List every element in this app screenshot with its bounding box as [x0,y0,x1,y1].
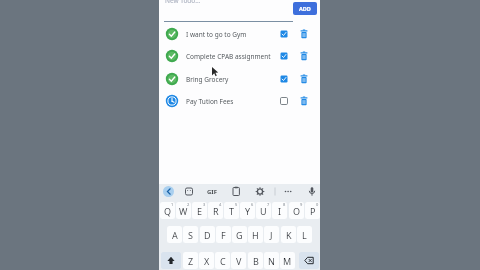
button[interactable]: Y [240,202,255,219]
button[interactable]: A [167,226,182,243]
staticText: Complete CPAB assignment [186,52,271,61]
staticText: H [252,229,259,241]
staticText: 4 [219,202,222,207]
staticText: Pay Tution Fees [186,97,234,106]
button[interactable]: P [305,202,320,219]
button[interactable]: O [289,202,304,219]
staticText: M [283,255,292,267]
staticText: J [270,229,273,241]
staticText: New Todo... [165,0,201,5]
staticText: L [302,229,307,241]
staticText: 8 [283,202,286,207]
button[interactable]: R [208,202,223,219]
button[interactable]: V [231,252,246,269]
staticText: 2 [187,202,190,207]
staticText: I want to go to Gym [186,30,247,39]
button[interactable]: B [248,252,263,269]
staticText: 3 [203,202,206,207]
button[interactable]: C [215,252,230,269]
button[interactable]: D [200,226,215,243]
staticText: N [268,255,275,267]
button[interactable]: L [297,226,312,243]
staticText: Bring Grocery [186,75,229,84]
staticText: C [220,255,226,267]
staticText: G [236,229,243,241]
staticText: X [204,255,210,267]
button[interactable]: J [264,226,279,243]
button[interactable]: Pay Tution Fees [159,90,320,112]
button[interactable]: G [232,226,247,243]
staticText: F [221,229,226,241]
button[interactable]: ADD [293,2,317,15]
staticText: S [188,229,193,241]
staticText: 5 [235,202,238,207]
button[interactable]: X [199,252,214,269]
button[interactable]: H [248,226,263,243]
button[interactable]: F [216,226,231,243]
button[interactable]: N [264,252,279,269]
button[interactable]: S [183,226,198,243]
button[interactable] [161,252,181,269]
staticText: P [310,205,316,217]
staticText: Q [164,205,172,217]
staticText: T [229,205,235,217]
button[interactable]: K [281,226,296,243]
button[interactable]: I [272,202,287,219]
staticText: 0 [316,202,319,207]
staticText: D [204,229,211,241]
staticText: 1 [171,202,174,207]
staticText: R [213,205,219,217]
button[interactable]: M [280,252,295,269]
button[interactable]: Bring Grocery [159,68,320,90]
button[interactable]: T [224,202,239,219]
staticText: O [293,205,301,217]
staticText: 7 [267,202,270,207]
button[interactable]: U [256,202,271,219]
button[interactable]: E [192,202,207,219]
staticText: GIF [207,188,217,196]
staticText: 6 [251,202,254,207]
button[interactable]: Complete CPAB assignment [159,45,320,67]
staticText: Z [188,255,194,267]
button[interactable]: I want to go to Gym [159,23,320,45]
staticText: 9 [300,202,303,207]
staticText: ADD [299,5,311,12]
staticText: Y [245,205,251,217]
staticText: V [236,255,242,267]
button[interactable]: Q [160,202,175,219]
button[interactable] [299,252,319,269]
staticText: I [278,205,282,217]
staticText: K [286,229,292,241]
staticText: U [260,205,267,217]
staticText: A [172,229,178,241]
staticText: E [197,205,203,217]
staticText: W [179,205,188,217]
button[interactable]: W [176,202,191,219]
staticText: B [253,255,259,267]
button[interactable]: Z [183,252,198,269]
